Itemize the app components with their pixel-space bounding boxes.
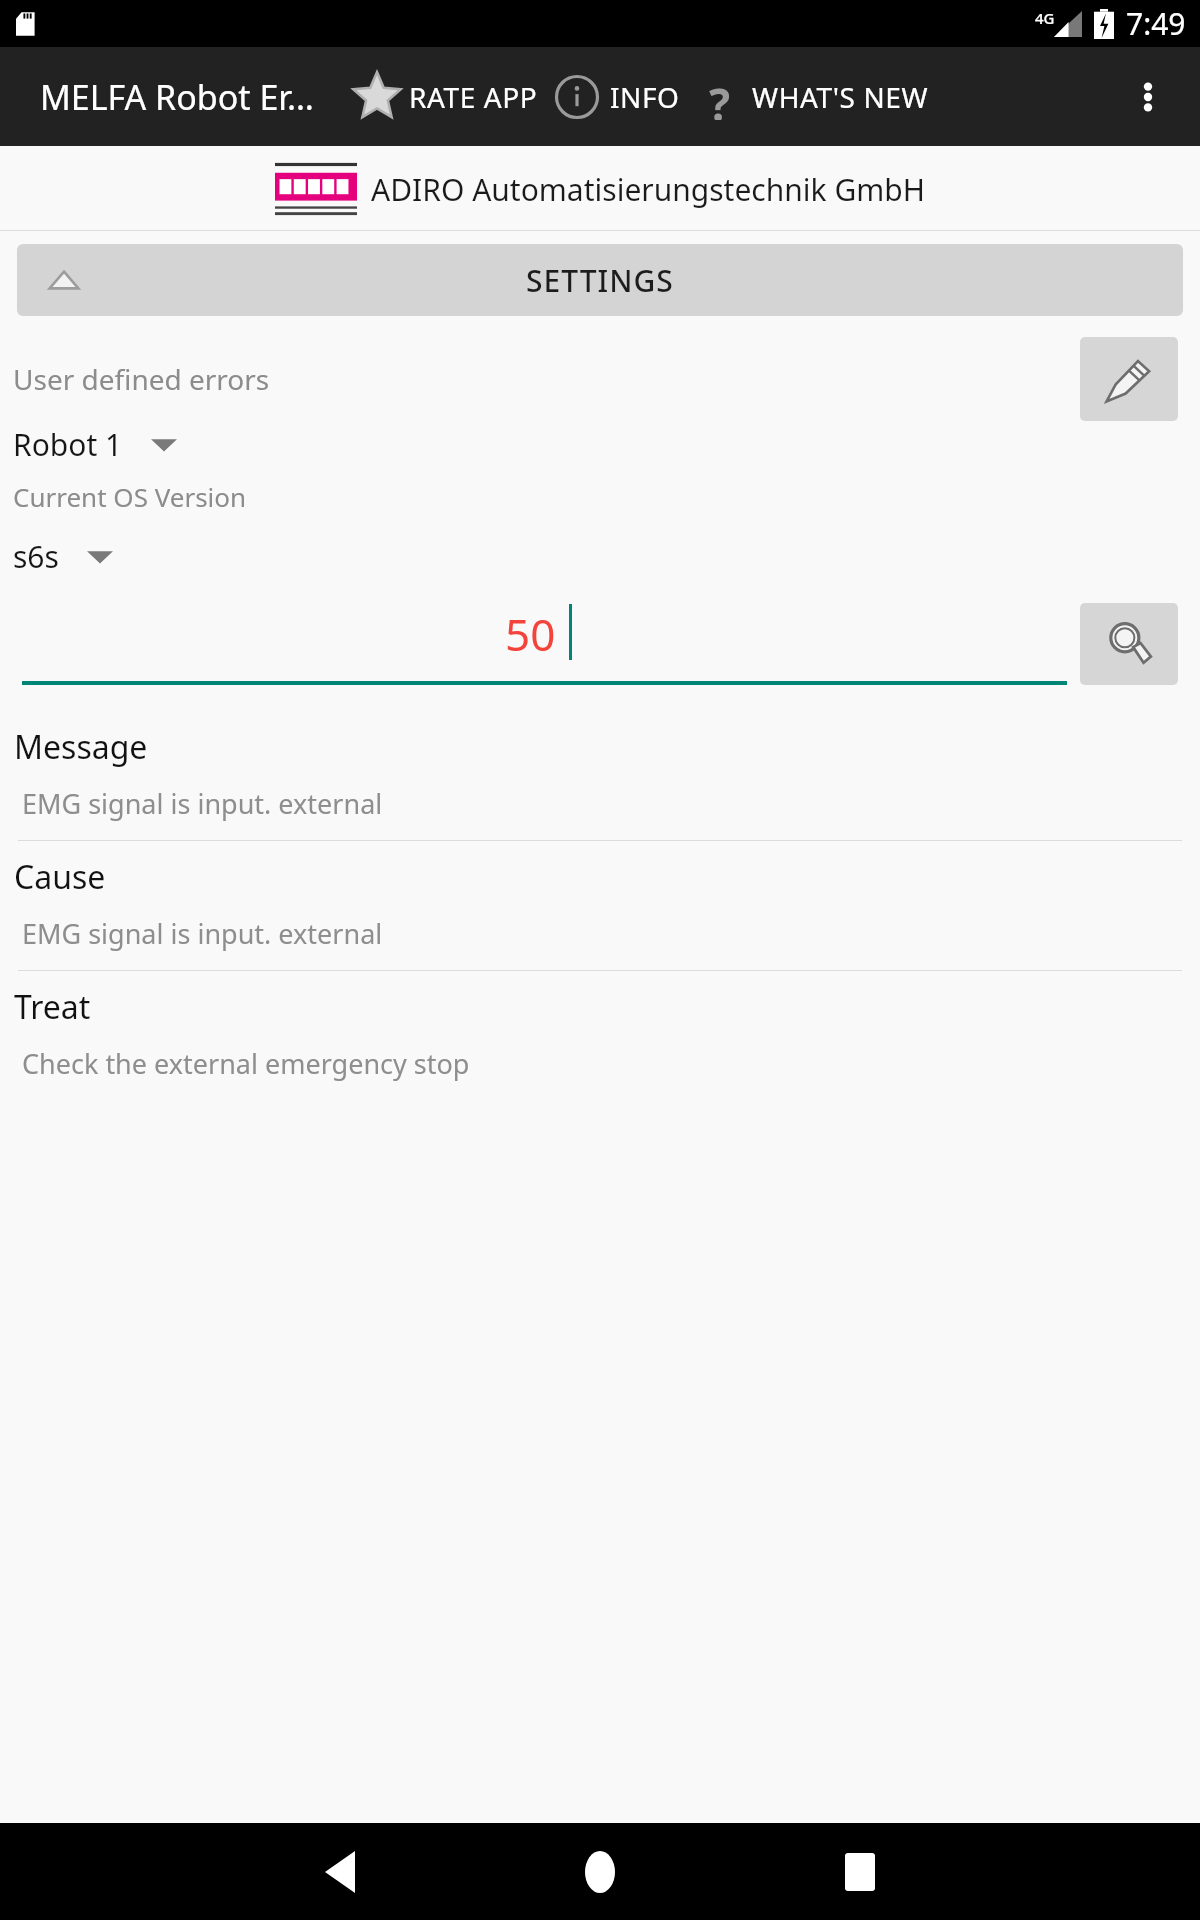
button[interactable]: Edit user defined errors xyxy=(1080,337,1178,421)
staticText: MELFA Robot Er… xyxy=(40,74,314,120)
staticText: Treat xyxy=(14,985,91,1029)
staticText: ADIRO Automatisierungstechnik GmbH xyxy=(371,169,925,210)
staticText: 50 xyxy=(505,604,556,664)
staticText: WHAT'S NEW xyxy=(752,78,929,116)
button[interactable]: Home xyxy=(545,1823,655,1920)
staticText: 7:49 xyxy=(1126,3,1186,44)
staticText: ? xyxy=(709,74,730,120)
staticText: EMG signal is input. external xyxy=(22,915,383,952)
button[interactable]: 50 xyxy=(22,595,1067,685)
button[interactable]: INFO xyxy=(548,74,686,120)
button[interactable]: SETTINGS xyxy=(17,244,1183,316)
staticText: Robot 1 xyxy=(13,424,123,465)
button[interactable]: RATE APP xyxy=(345,71,544,123)
button[interactable]: Search xyxy=(1080,603,1178,685)
button[interactable]: Recent apps xyxy=(805,1823,915,1920)
staticText: s6s xyxy=(13,536,59,577)
button[interactable]: s6s xyxy=(13,536,113,577)
staticText: SETTINGS xyxy=(526,260,674,301)
staticText: Current OS Version xyxy=(13,479,247,514)
staticText: Message xyxy=(14,725,148,769)
button[interactable]: Robot 1 xyxy=(13,424,177,465)
staticText: INFO xyxy=(610,78,680,116)
staticText: Check the external emergency stop xyxy=(22,1045,470,1082)
staticText: EMG signal is input. external xyxy=(22,785,383,822)
staticText: 4G xyxy=(1035,8,1055,28)
button[interactable]: Back xyxy=(285,1823,395,1920)
button[interactable]: ? xyxy=(690,74,935,120)
staticText: User defined errors xyxy=(13,360,270,398)
button[interactable]: More options xyxy=(1118,67,1178,127)
staticText: RATE APP xyxy=(409,78,538,116)
staticText: Cause xyxy=(14,855,106,899)
